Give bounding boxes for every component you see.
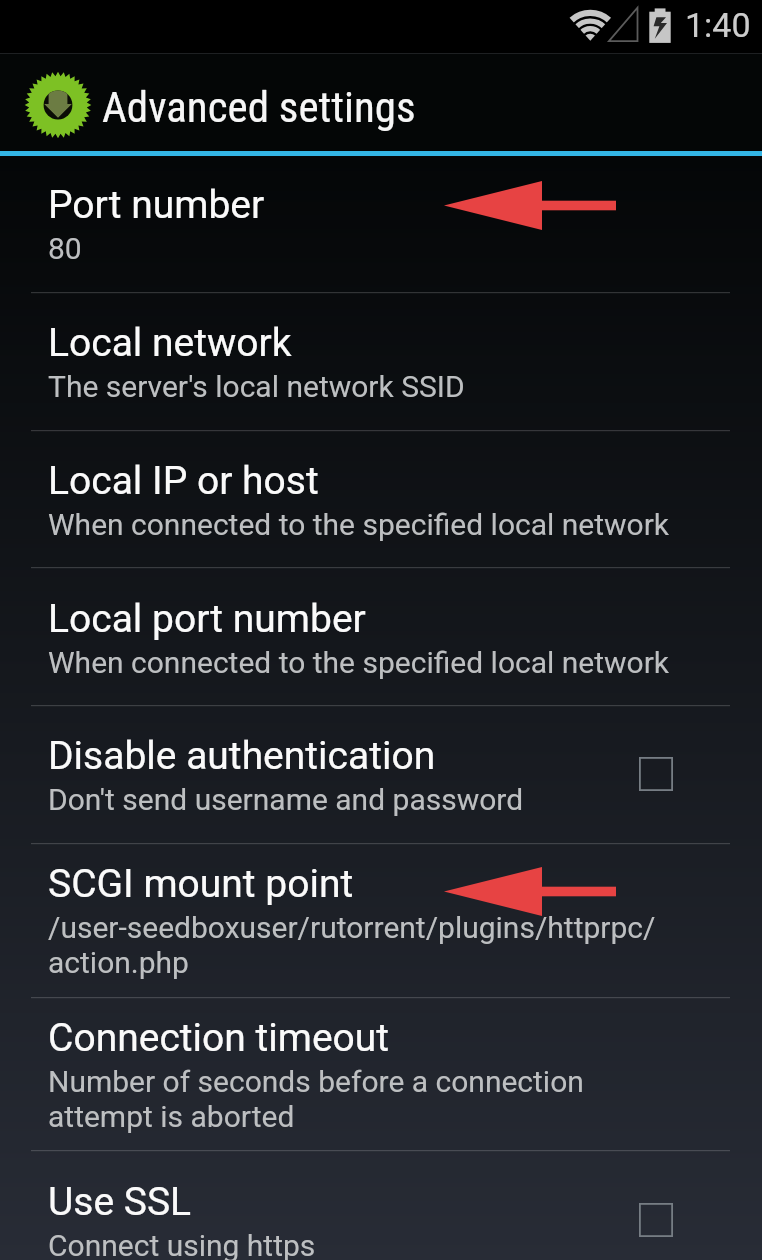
staticText: The server's local network SSID [48, 369, 465, 404]
button[interactable]: Local port number [0, 567, 762, 705]
staticText: 1:40 [685, 5, 751, 45]
button[interactable]: Local IP or host [0, 430, 762, 567]
staticText: Connection timeout [48, 1015, 390, 1061]
staticText: When connected to the specified local ne… [48, 507, 670, 542]
button[interactable]: Toggle Disable authentication [639, 757, 673, 791]
staticText: Local port number [48, 596, 366, 642]
staticText: Number of seconds before a connection at… [48, 1064, 584, 1134]
button[interactable]: Use SSL [0, 1150, 762, 1260]
staticText: When connected to the specified local ne… [48, 645, 670, 680]
staticText: 80 [48, 231, 82, 266]
staticText: Port number [48, 182, 265, 228]
button[interactable]: SCGI mount point [0, 843, 762, 997]
button[interactable]: Local network [0, 292, 762, 430]
staticText: Connect using https [48, 1228, 316, 1260]
button[interactable]: Port number [0, 156, 762, 292]
staticText: /user-seedboxuser/rutorrent/plugins/http… [48, 910, 656, 980]
button[interactable]: Toggle Use SSL [639, 1203, 673, 1237]
staticText: Don't send username and password [48, 782, 524, 817]
staticText: Use SSL [48, 1179, 192, 1225]
other: App icon [24, 71, 92, 139]
button[interactable]: Connection timeout [0, 997, 762, 1150]
staticText: SCGI mount point [48, 861, 354, 907]
staticText: Local IP or host [48, 458, 319, 504]
button[interactable]: Disable authentication [0, 705, 762, 843]
staticText: Disable authentication [48, 733, 436, 779]
staticText: Local network [48, 320, 292, 366]
staticText: Advanced settings [102, 82, 416, 132]
